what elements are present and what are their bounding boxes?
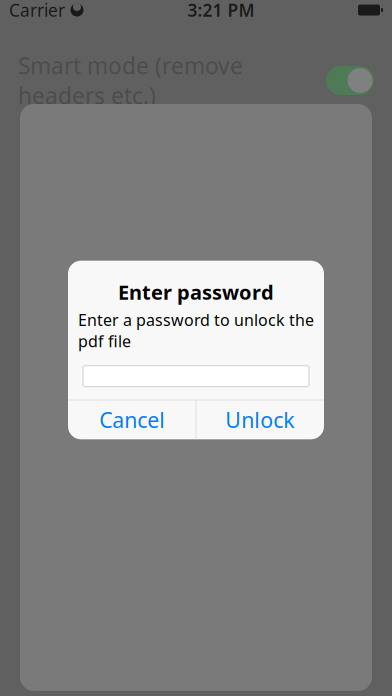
button[interactable]: Cancel <box>69 400 196 439</box>
staticText: 3:21 PM <box>187 0 254 21</box>
staticText: Unlock <box>225 406 294 434</box>
button[interactable]: Smart mode toggle <box>326 66 374 95</box>
staticText: Cancel <box>99 406 165 434</box>
button[interactable]: Unlock <box>196 400 323 439</box>
staticText: Smart mode (remove headers etc.) <box>18 50 243 111</box>
staticText: Enter password <box>118 279 274 305</box>
staticText: Enter a password to unlock the pdf file <box>78 309 314 352</box>
staticText: Carrier <box>9 0 65 21</box>
